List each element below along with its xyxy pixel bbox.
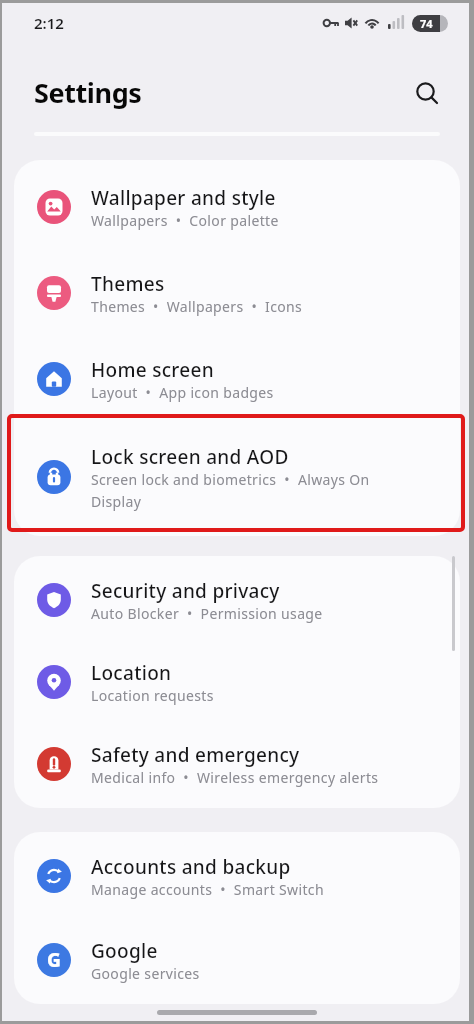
button[interactable]: Safety and emergency [14, 723, 460, 805]
staticText: Wallpaper and style [91, 185, 276, 211]
staticText: Safety and emergency [91, 742, 300, 768]
button[interactable]: Security and privacy [14, 559, 460, 641]
staticText: Lock screen and AOD [91, 444, 289, 470]
staticText: Layout • App icon badges [91, 383, 274, 402]
button[interactable]: Lock screen and AOD [14, 422, 460, 532]
staticText: Home screen [91, 357, 214, 383]
button[interactable]: Accounts and backup [14, 834, 460, 918]
staticText: Wallpapers • Color palette [91, 211, 279, 230]
staticText: 74 [420, 16, 433, 31]
staticText: Auto Blocker • Permission usage [91, 604, 323, 623]
staticText: Themes • Wallpapers • Icons [91, 297, 303, 316]
staticText: Medical info • Wireless emergency alerts [91, 768, 379, 787]
staticText: Security and privacy [91, 578, 280, 604]
button[interactable]: Home screen [14, 336, 460, 422]
staticText: Settings [34, 74, 142, 111]
button[interactable] [414, 81, 440, 107]
staticText: Google [91, 938, 158, 964]
staticText: 2:12 [34, 13, 64, 33]
staticText: Google services [91, 964, 200, 983]
staticText: Location requests [91, 686, 214, 705]
staticText: Themes [91, 271, 165, 297]
button[interactable]: Themes [14, 250, 460, 336]
button[interactable]: Location [14, 641, 460, 723]
button[interactable]: Wallpaper and style [14, 164, 460, 250]
staticText: Accounts and backup [91, 854, 291, 880]
staticText: Screen lock and biometrics • Always On D… [91, 470, 370, 511]
staticText: Location [91, 660, 172, 686]
button[interactable]: G [14, 918, 460, 1002]
staticText: G [47, 947, 61, 973]
staticText: Manage accounts • Smart Switch [91, 880, 324, 899]
